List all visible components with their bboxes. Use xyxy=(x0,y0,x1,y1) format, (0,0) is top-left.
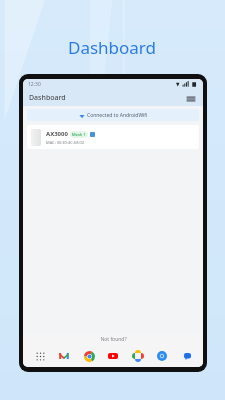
button[interactable]: Messages xyxy=(179,348,195,364)
button[interactable]: Connected to AndroidWifi xyxy=(27,109,199,121)
button[interactable]: Menu xyxy=(184,92,197,105)
staticText: Not found? xyxy=(100,336,127,343)
button[interactable]: Chrome xyxy=(81,348,97,364)
button[interactable]: YouTube xyxy=(105,348,121,364)
staticText: 12:30 xyxy=(28,81,41,88)
staticText: AX3000 xyxy=(46,130,68,138)
button[interactable]: Meet xyxy=(154,348,170,364)
staticText: Connected to AndroidWifi xyxy=(87,112,148,119)
button[interactable]: Photos xyxy=(130,348,146,364)
staticText: Dashboard xyxy=(68,36,157,59)
staticText: Mesh 1 xyxy=(72,132,86,137)
button[interactable]: AX3000 xyxy=(27,125,199,149)
button[interactable]: Gmail xyxy=(56,348,72,364)
staticText: Dashboard xyxy=(29,93,66,103)
button[interactable]: Apps xyxy=(32,348,48,364)
button[interactable]: Not found? xyxy=(100,336,127,343)
staticText: MAC: 00:E0:4C:68:02 xyxy=(46,140,85,145)
